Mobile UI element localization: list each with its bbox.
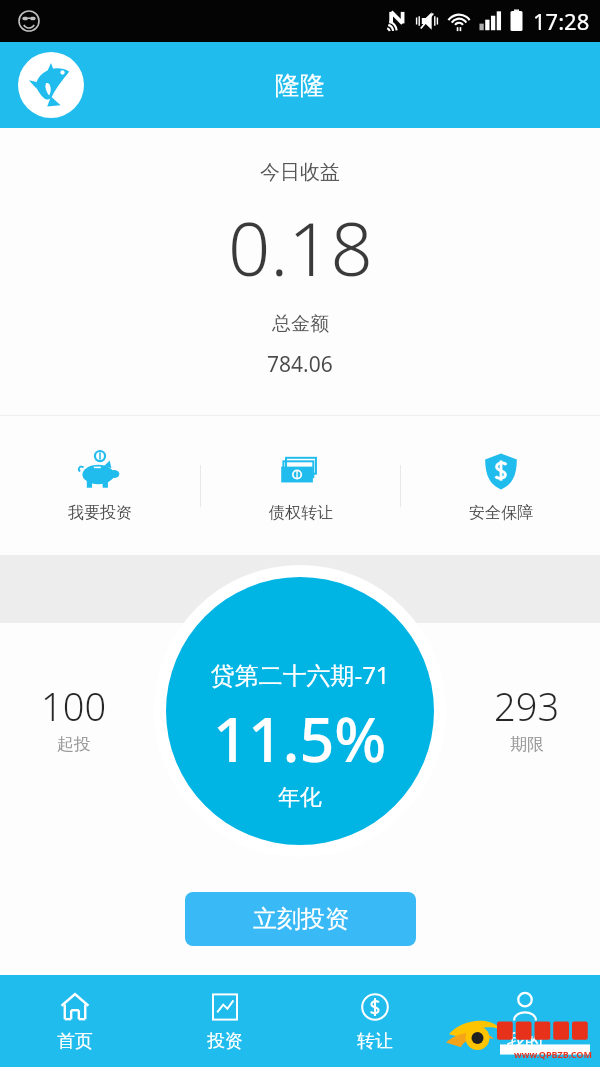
- button[interactable]: Logo: [18, 52, 84, 118]
- staticText: 我的: [507, 1030, 543, 1053]
- button[interactable]: 我的: [450, 975, 600, 1067]
- staticText: 年化: [278, 784, 322, 812]
- button[interactable]: 投资: [150, 975, 300, 1067]
- staticText: 期限: [510, 734, 544, 755]
- button[interactable]: 贷第二十六期-71: [166, 577, 434, 845]
- staticText: 转让: [357, 1030, 393, 1053]
- button[interactable]: 立刻投资: [185, 892, 416, 946]
- button[interactable]: 首页: [0, 975, 150, 1067]
- staticText: www.QPBZB.COM: [514, 1048, 592, 1060]
- staticText: 投资: [207, 1030, 243, 1053]
- staticText: 293: [494, 680, 560, 732]
- staticText: 0.18: [228, 197, 373, 298]
- staticText: 立刻投资: [253, 904, 349, 934]
- staticText: 总金额: [272, 312, 329, 336]
- staticText: 我要投资: [68, 503, 132, 523]
- staticText: 贷第二十六期-71: [210, 658, 390, 691]
- staticText: 首页: [57, 1030, 93, 1053]
- staticText: 安全保障: [469, 503, 533, 523]
- staticText: 100: [41, 680, 107, 732]
- staticText: 起投: [57, 734, 91, 755]
- staticText: 784.06: [267, 350, 333, 379]
- button[interactable]: 我要投资: [0, 416, 200, 555]
- button[interactable]: 转让: [300, 975, 450, 1067]
- staticText: 隆隆: [275, 70, 325, 101]
- button[interactable]: 安全保障: [401, 416, 600, 555]
- staticText: 11.5%: [213, 697, 387, 780]
- staticText: 17:28: [533, 6, 590, 36]
- button[interactable]: 债权转让: [201, 416, 400, 555]
- staticText: 今日收益: [260, 160, 340, 185]
- staticText: 债权转让: [269, 503, 333, 523]
